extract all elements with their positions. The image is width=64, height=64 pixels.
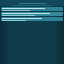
button[interactable]: [0, 0, 64, 6]
button[interactable]: Second card: [1, 12, 63, 16]
button[interactable]: Third card: [1, 17, 63, 21]
button[interactable]: First card: [1, 7, 63, 11]
